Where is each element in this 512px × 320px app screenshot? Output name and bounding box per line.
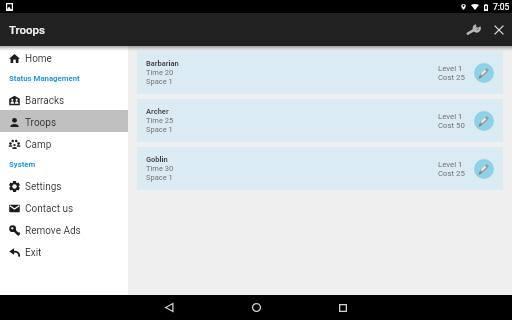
staticText: Level 1 <box>438 160 463 169</box>
button[interactable]: Back <box>152 295 187 320</box>
button[interactable]: Edit <box>474 63 494 83</box>
button[interactable]: Close <box>487 18 511 42</box>
button[interactable]: Barracks <box>0 88 128 110</box>
staticText: Settings <box>25 181 62 193</box>
staticText: System <box>9 160 36 169</box>
staticText: Troops <box>25 117 57 129</box>
button[interactable]: Archer <box>137 99 503 142</box>
button[interactable]: Goblin <box>137 147 503 190</box>
button[interactable]: Settings <box>461 18 485 42</box>
staticText: Time 30 <box>146 164 174 173</box>
staticText: Time 25 <box>146 116 174 125</box>
staticText: Home <box>25 53 52 65</box>
staticText: Barbarian <box>146 59 179 68</box>
staticText: Space 1 <box>146 125 173 134</box>
button[interactable]: Recents <box>325 295 360 320</box>
button[interactable]: Contact us <box>0 196 128 218</box>
button[interactable]: Settings <box>0 174 128 196</box>
staticText: Camp <box>25 139 52 151</box>
staticText: Level 1 <box>438 64 463 73</box>
staticText: Troops <box>9 23 45 36</box>
button[interactable]: Remove Ads <box>0 218 128 240</box>
button[interactable]: Barbarian <box>137 51 503 94</box>
staticText: Time 20 <box>146 68 174 77</box>
button[interactable]: Home <box>0 46 128 68</box>
button[interactable]: Troops <box>0 110 128 132</box>
button[interactable]: Edit <box>474 111 494 131</box>
staticText: Cost 50 <box>438 121 465 130</box>
staticText: Archer <box>146 107 169 116</box>
staticText: Space 1 <box>146 77 173 86</box>
staticText: Cost 25 <box>438 169 465 178</box>
button[interactable]: Exit <box>0 240 128 262</box>
button[interactable]: Edit <box>474 159 494 179</box>
staticText: 7:05 <box>493 2 510 12</box>
button[interactable]: Camp <box>0 132 128 154</box>
staticText: Barracks <box>25 95 65 107</box>
staticText: Contact us <box>25 203 74 215</box>
staticText: Remove Ads <box>25 225 81 237</box>
staticText: Cost 25 <box>438 73 465 82</box>
staticText: Goblin <box>146 155 168 164</box>
staticText: Status Management <box>9 74 80 83</box>
button[interactable]: Home <box>239 295 274 320</box>
staticText: Space 1 <box>146 173 173 182</box>
staticText: Level 1 <box>438 112 463 121</box>
staticText: Exit <box>25 247 42 259</box>
